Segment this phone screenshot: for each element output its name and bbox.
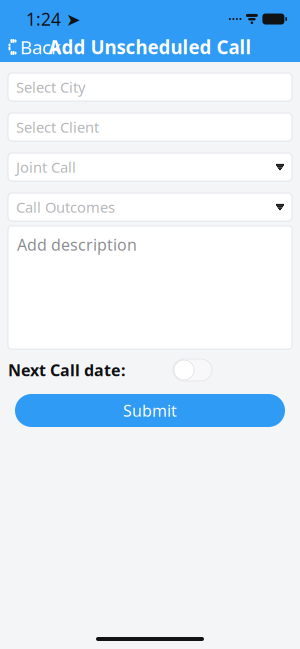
staticText: Joint Call (16, 157, 76, 177)
staticText: Submit (123, 400, 177, 421)
staticText: Call Outcomes (16, 197, 115, 217)
staticText: Add Unscheduled Call (48, 35, 251, 59)
button[interactable]: Next Call date toggle (173, 359, 212, 381)
button[interactable]: Call Outcomes (8, 193, 292, 221)
staticText: Select Client (16, 117, 99, 137)
staticText: Add description (17, 234, 137, 255)
button[interactable]: Submit (15, 394, 285, 427)
button[interactable]: Back (0, 31, 69, 63)
staticText: 1:24 ➤ (26, 7, 81, 30)
button[interactable]: Select City (8, 73, 292, 101)
staticText: Next Call date: (8, 359, 125, 381)
button[interactable]: Add description (8, 226, 292, 349)
button[interactable]: Select Client (8, 113, 292, 141)
staticText: Back (20, 35, 61, 59)
button[interactable]: Joint Call (8, 153, 292, 181)
staticText: Select City (16, 77, 85, 97)
